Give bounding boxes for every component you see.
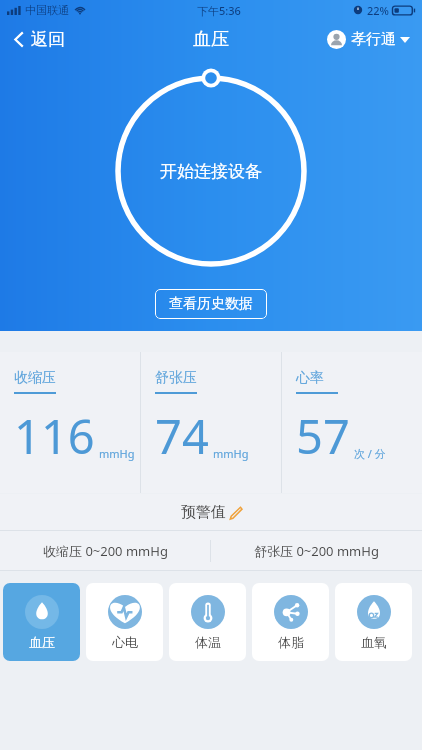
button[interactable]: 体温	[169, 583, 246, 661]
staticText: 74	[155, 404, 209, 468]
other: 编辑预警值	[229, 506, 242, 519]
button[interactable]: 收缩压	[0, 352, 140, 493]
staticText: mmHg	[213, 446, 249, 461]
staticText: 预警值	[181, 503, 226, 522]
staticText: 血压	[29, 634, 55, 650]
staticText: 116	[14, 404, 95, 468]
staticText: 舒张压 0~200 mmHg	[254, 542, 379, 560]
button[interactable]: 心率	[282, 352, 422, 493]
staticText: 中国联通	[25, 3, 69, 17]
staticText: mmHg	[99, 446, 135, 461]
staticText: 心率	[296, 369, 324, 387]
staticText: 孝行通	[351, 30, 396, 49]
staticText: 57	[296, 404, 350, 468]
staticText: 下午5:36	[197, 3, 241, 18]
staticText: 血氧	[361, 634, 387, 650]
button[interactable]: 返回	[0, 24, 77, 55]
button[interactable]: 血压	[3, 583, 80, 661]
button[interactable]: 心电	[86, 583, 163, 661]
staticText: 返回	[31, 29, 65, 50]
staticText: 体温	[195, 634, 221, 650]
staticText: 22%	[367, 3, 389, 18]
staticText: 收缩压	[14, 369, 56, 387]
staticText: 心电	[112, 634, 138, 650]
button[interactable]: 体脂	[252, 583, 329, 661]
staticText: 收缩压 0~200 mmHg	[43, 542, 168, 560]
button[interactable]: 血氧	[335, 583, 412, 661]
staticText: 开始连接设备	[160, 161, 262, 182]
staticText: 查看历史数据	[169, 295, 253, 313]
button[interactable]: 舒张压	[141, 352, 281, 493]
staticText: 血压	[193, 28, 229, 51]
staticText: 体脂	[278, 634, 304, 650]
button[interactable]: 预警值	[0, 503, 422, 522]
button[interactable]: 查看历史数据	[155, 289, 267, 319]
button[interactable]: 孝行通	[315, 25, 422, 54]
staticText: 舒张压	[155, 369, 197, 387]
staticText: 次 / 分	[354, 446, 386, 461]
